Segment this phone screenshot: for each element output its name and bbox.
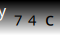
staticText: 4 [28,10,36,29]
staticText: c [45,6,54,31]
staticText: 7 [14,10,22,29]
staticText: y [0,0,6,21]
